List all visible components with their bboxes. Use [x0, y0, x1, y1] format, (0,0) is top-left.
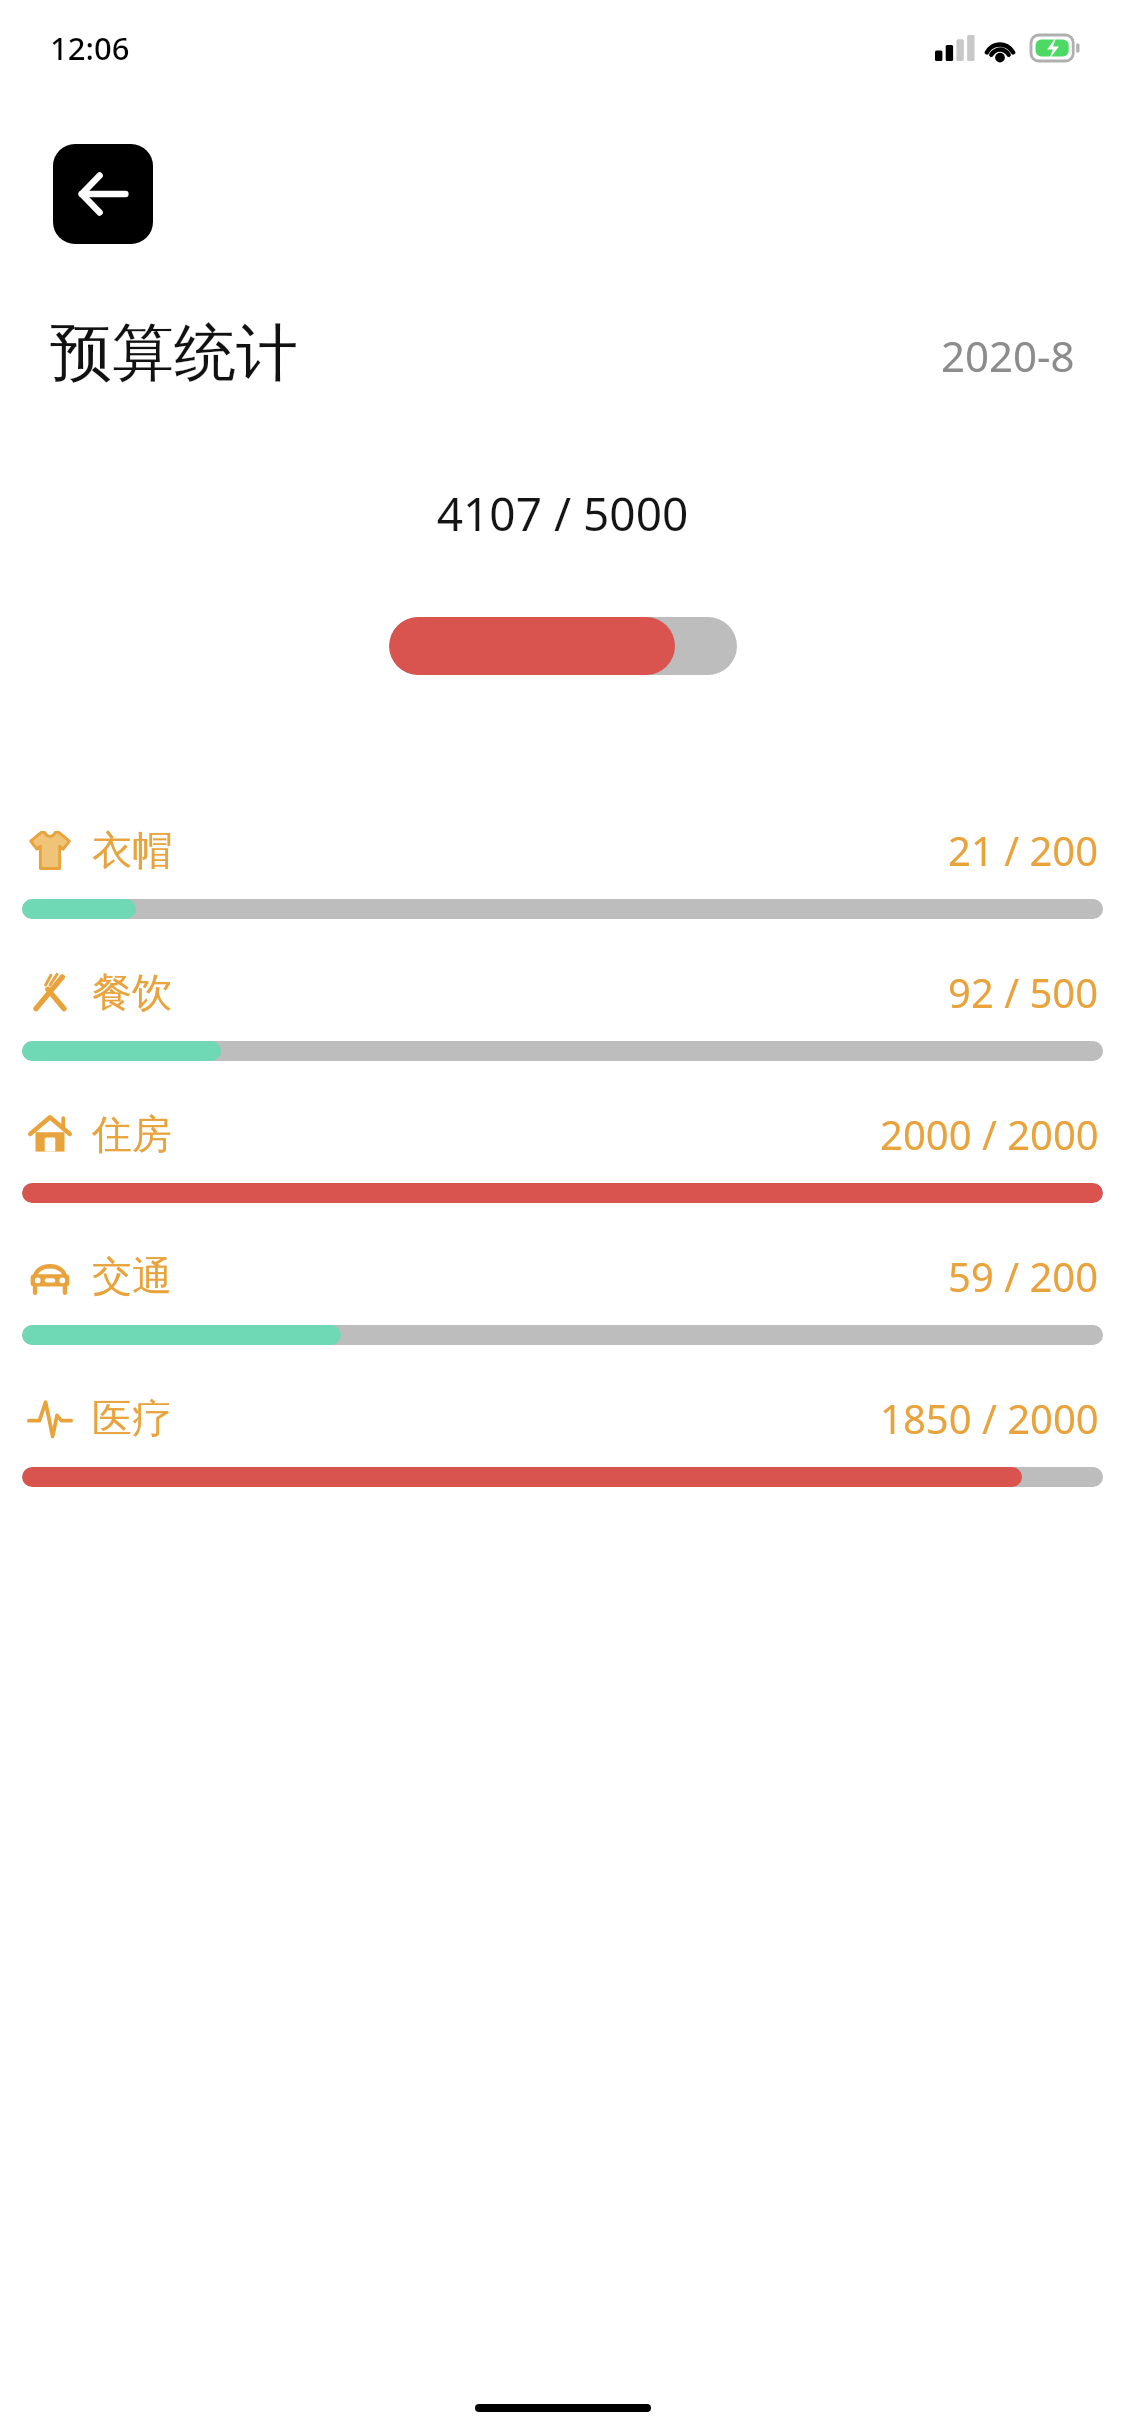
- staticText: 交通: [92, 1251, 172, 1301]
- staticText: 92 / 500: [948, 965, 1099, 1019]
- staticText: 59 / 200: [948, 1249, 1099, 1303]
- staticText: 2020-8: [941, 327, 1075, 384]
- button[interactable]: 住房: [0, 1107, 1125, 1203]
- staticText: 衣帽: [92, 825, 172, 875]
- staticText: 餐饮: [92, 967, 172, 1017]
- staticText: 2000 / 2000: [880, 1107, 1099, 1161]
- button[interactable]: 衣帽: [0, 823, 1125, 919]
- staticText: 1850 / 2000: [880, 1391, 1099, 1445]
- staticText: 医疗: [92, 1393, 172, 1443]
- button[interactable]: Back: [53, 144, 153, 244]
- staticText: 4107 / 5000: [0, 482, 1125, 545]
- button[interactable]: 医疗: [0, 1391, 1125, 1487]
- button[interactable]: 餐饮: [0, 965, 1125, 1061]
- button[interactable]: 交通: [0, 1249, 1125, 1345]
- staticText: 21 / 200: [948, 823, 1099, 877]
- staticText: 住房: [92, 1109, 172, 1159]
- staticText: 预算统计: [50, 314, 298, 392]
- staticText: 12:06: [50, 27, 130, 69]
